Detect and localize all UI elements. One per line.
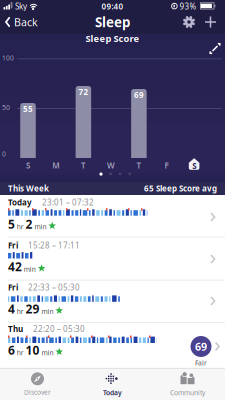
staticText: Back bbox=[14, 15, 38, 29]
staticText: 4 bbox=[8, 301, 15, 317]
button[interactable]: Settings bbox=[182, 15, 196, 29]
staticText: Today bbox=[8, 197, 32, 208]
staticText: 6 bbox=[8, 342, 15, 358]
button[interactable]: Expand chart bbox=[210, 43, 220, 53]
staticText: Sleep bbox=[95, 13, 130, 31]
staticText: min bbox=[34, 222, 46, 231]
staticText: 15:28 – 17:11 bbox=[28, 240, 80, 251]
staticText: Fri bbox=[8, 282, 18, 293]
staticText: min bbox=[41, 307, 53, 316]
staticText: 69 bbox=[195, 339, 207, 354]
button[interactable]: Thu bbox=[0, 322, 225, 368]
button[interactable]: Community bbox=[150, 369, 225, 400]
staticText: hr bbox=[17, 222, 24, 231]
staticText: Discover bbox=[24, 388, 51, 397]
staticText: T bbox=[81, 160, 86, 171]
staticText: 93% bbox=[179, 1, 196, 12]
button[interactable]: Discover bbox=[0, 369, 75, 400]
button[interactable]: Today bbox=[75, 369, 150, 400]
staticText: 0 bbox=[2, 150, 6, 158]
button[interactable]: Today bbox=[0, 195, 225, 237]
staticText: 22:20 – 05:30 bbox=[33, 324, 85, 334]
staticText: 72 bbox=[78, 87, 88, 97]
staticText: Community bbox=[170, 388, 205, 397]
staticText: hr bbox=[17, 348, 24, 357]
staticText: S bbox=[192, 160, 196, 171]
staticText: 09:40 bbox=[101, 1, 123, 12]
button[interactable]: Back bbox=[5, 13, 39, 31]
staticText: 65 Sleep Score avg bbox=[144, 183, 217, 194]
staticText: This Week bbox=[8, 183, 49, 194]
staticText: 22:33 – 05:30 bbox=[28, 282, 80, 293]
button[interactable]: Fri bbox=[0, 237, 225, 280]
staticText: Today bbox=[103, 388, 122, 397]
staticText: 10 bbox=[26, 342, 40, 358]
staticText: T bbox=[136, 160, 141, 171]
button[interactable]: Add sleep log bbox=[205, 16, 216, 27]
staticText: Fair bbox=[195, 359, 207, 367]
staticText: 100 bbox=[2, 53, 14, 62]
staticText: S bbox=[26, 160, 30, 171]
staticText: 55 bbox=[23, 104, 33, 114]
staticText: hr bbox=[17, 307, 24, 316]
staticText: W bbox=[107, 160, 115, 171]
staticText: 29 bbox=[26, 301, 40, 317]
staticText: 23:01 – 07:32 bbox=[42, 197, 94, 208]
staticText: min bbox=[41, 348, 53, 357]
staticText: 42 bbox=[8, 258, 22, 274]
button[interactable]: Fri bbox=[0, 280, 225, 322]
staticText: M bbox=[52, 160, 59, 171]
staticText: 69 bbox=[134, 90, 144, 100]
staticText: 5 bbox=[8, 216, 15, 232]
staticText: Sleep Score bbox=[85, 32, 139, 45]
staticText: 50 bbox=[2, 103, 10, 112]
staticText: F bbox=[165, 160, 169, 171]
staticText: Sky bbox=[15, 1, 27, 12]
staticText: min bbox=[24, 265, 36, 273]
staticText: 2 bbox=[26, 216, 33, 232]
staticText: Fri bbox=[8, 240, 18, 251]
staticText: Thu bbox=[8, 324, 23, 334]
